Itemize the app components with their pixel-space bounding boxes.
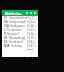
staticText: Grinzing xyxy=(11,44,22,48)
button[interactable]: 2 xyxy=(2,28,38,32)
staticText: 16:24 xyxy=(27,20,34,24)
button[interactable]: D xyxy=(2,32,38,36)
button[interactable]: S1 xyxy=(2,16,38,20)
staticText: S2 xyxy=(4,40,8,44)
staticText: 16:43 xyxy=(27,40,34,44)
staticText: Skodagasse xyxy=(10,24,25,28)
staticText: Floridsdorf xyxy=(9,40,23,44)
staticText: Abfahrten xyxy=(5,11,22,16)
staticText: 43 xyxy=(4,36,8,40)
staticText: S1 xyxy=(4,16,8,20)
staticText: Friedrichstr. xyxy=(7,28,22,32)
button[interactable]: S2 xyxy=(2,40,38,44)
staticText: 16:21 xyxy=(28,16,35,20)
staticText: 16:47 xyxy=(27,44,34,48)
staticText: 16:32 xyxy=(27,28,34,32)
staticText: Neuwaldegg xyxy=(9,36,26,40)
staticText: D xyxy=(4,32,6,36)
staticText: 16:39 xyxy=(27,36,34,40)
staticText: 13A xyxy=(4,24,9,28)
staticText: N38 xyxy=(4,44,10,48)
button[interactable]: N38 xyxy=(2,44,38,48)
button[interactable]: U4 xyxy=(2,20,38,24)
staticText: U4 xyxy=(4,20,8,24)
staticText: 16:28 xyxy=(27,24,34,28)
staticText: Heiligenstadt xyxy=(9,20,26,24)
staticText: Nussdorf xyxy=(7,32,19,36)
staticText: 2 xyxy=(4,28,6,32)
staticText: Hauptbahnhof xyxy=(9,16,28,20)
button[interactable]: 43 xyxy=(2,36,38,40)
staticText: 16:36 xyxy=(27,32,34,36)
button[interactable]: 13A xyxy=(2,24,38,28)
